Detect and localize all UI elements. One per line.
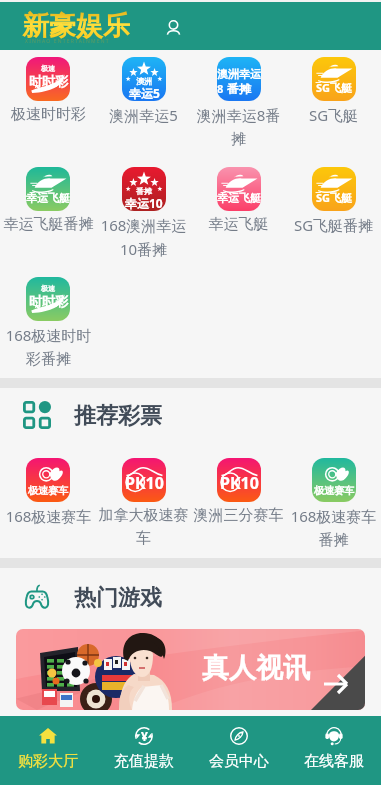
- staticText: 幸运5: [129, 85, 160, 101]
- staticText: 时时彩: [29, 293, 68, 309]
- staticText: 幸运飞艇: [192, 215, 285, 234]
- button[interactable]: 真人视讯: [16, 629, 365, 710]
- staticText: 澳洲: [136, 76, 152, 86]
- staticText: SG飞艇: [287, 105, 380, 125]
- staticText: 168极速赛车: [2, 506, 95, 526]
- button[interactable]: Account: [163, 18, 184, 39]
- staticText: 幸运飞艇番摊: [2, 215, 95, 234]
- staticText: 在线客服: [304, 752, 364, 771]
- staticText: 新豪娱乐: [22, 9, 130, 43]
- staticText: 极速: [41, 284, 55, 293]
- staticText: ¥: [141, 728, 148, 744]
- staticText: 番摊: [136, 186, 152, 196]
- button[interactable]: 极速赛车: [286, 448, 381, 558]
- button[interactable]: 极速: [0, 270, 96, 378]
- staticText: 会员中心: [209, 752, 269, 771]
- staticText: 极速赛车: [28, 484, 68, 497]
- button[interactable]: 极速赛车: [0, 448, 96, 558]
- staticText: 168极速时时彩番摊: [2, 325, 95, 369]
- staticText: SG飞艇: [316, 80, 353, 95]
- button[interactable]: SG飞艇: [286, 160, 381, 270]
- staticText: SG飞艇: [316, 190, 353, 205]
- staticText: 真人视讯: [202, 651, 310, 685]
- button[interactable]: 在线客服: [286, 716, 381, 785]
- staticText: PK10: [220, 472, 259, 494]
- staticText: 幸运飞艇: [217, 191, 261, 205]
- button[interactable]: PK10: [96, 448, 191, 558]
- staticText: SG飞艇番摊: [287, 215, 380, 235]
- button[interactable]: 番摊: [96, 160, 191, 270]
- staticText: 澳洲幸运5: [97, 105, 190, 125]
- staticText: 推荐彩票: [74, 402, 162, 430]
- staticText: 极速: [41, 64, 55, 73]
- staticText: XINHAO ENTERTAINMENT: [25, 38, 110, 45]
- button[interactable]: 澳洲: [96, 50, 191, 160]
- staticText: 澳洲幸运8: [217, 67, 261, 96]
- staticText: 番摊: [227, 81, 251, 96]
- staticText: 幸运飞艇: [26, 191, 70, 205]
- staticText: 加拿大极速赛车: [97, 506, 190, 548]
- staticText: 极速赛车: [314, 484, 354, 497]
- staticText: 澳洲幸运8番摊: [192, 105, 285, 149]
- staticText: 时时彩: [29, 73, 68, 89]
- staticText: 澳洲三分赛车: [192, 506, 285, 525]
- staticText: PK10: [125, 472, 164, 494]
- staticText: 热门游戏: [74, 584, 162, 612]
- button[interactable]: 澳洲幸运8: [191, 50, 286, 160]
- staticText: 充值提款: [114, 752, 174, 771]
- button[interactable]: 极速: [0, 50, 96, 160]
- button[interactable]: PK10: [191, 448, 286, 558]
- staticText: 购彩大厅: [18, 752, 78, 771]
- button[interactable]: 幸运飞艇: [0, 160, 96, 270]
- staticText: 168极速赛车番摊: [287, 506, 380, 550]
- staticText: 幸运10: [125, 195, 163, 211]
- staticText: 168澳洲幸运10番摊: [97, 215, 190, 260]
- button[interactable]: 购彩大厅: [0, 716, 96, 785]
- button[interactable]: SG飞艇: [286, 50, 381, 160]
- button[interactable]: 幸运飞艇: [191, 160, 286, 270]
- button[interactable]: 会员中心: [191, 716, 286, 785]
- button[interactable]: ¥: [96, 716, 191, 785]
- staticText: 极速时时彩: [2, 105, 95, 124]
